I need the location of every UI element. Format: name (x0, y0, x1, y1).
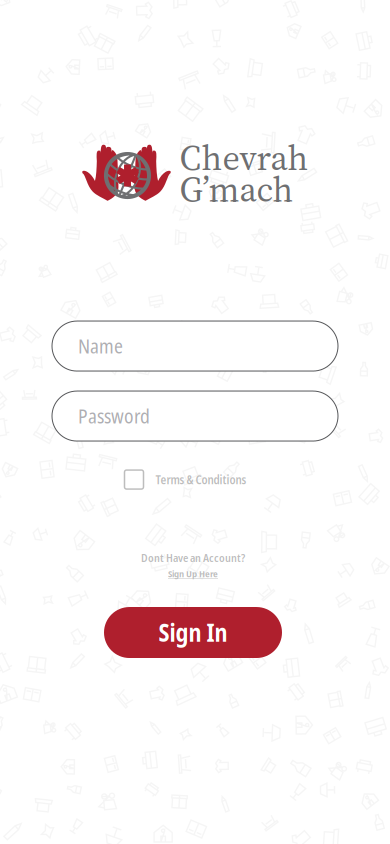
staticText: Chevrah (179, 134, 308, 181)
staticText: Name (78, 333, 123, 359)
button[interactable]: Terms & Conditions (116, 465, 254, 494)
staticText: Sign In (158, 616, 227, 649)
staticText: Terms & Conditions (155, 471, 246, 488)
button[interactable]: Sign In (104, 607, 282, 658)
staticText: G’mach (179, 165, 293, 213)
button[interactable]: Sign Up Here (168, 567, 218, 580)
staticText: Sign Up Here (168, 567, 218, 580)
staticText: Dont Have an Account? (141, 550, 245, 565)
staticText: Password (78, 403, 150, 429)
